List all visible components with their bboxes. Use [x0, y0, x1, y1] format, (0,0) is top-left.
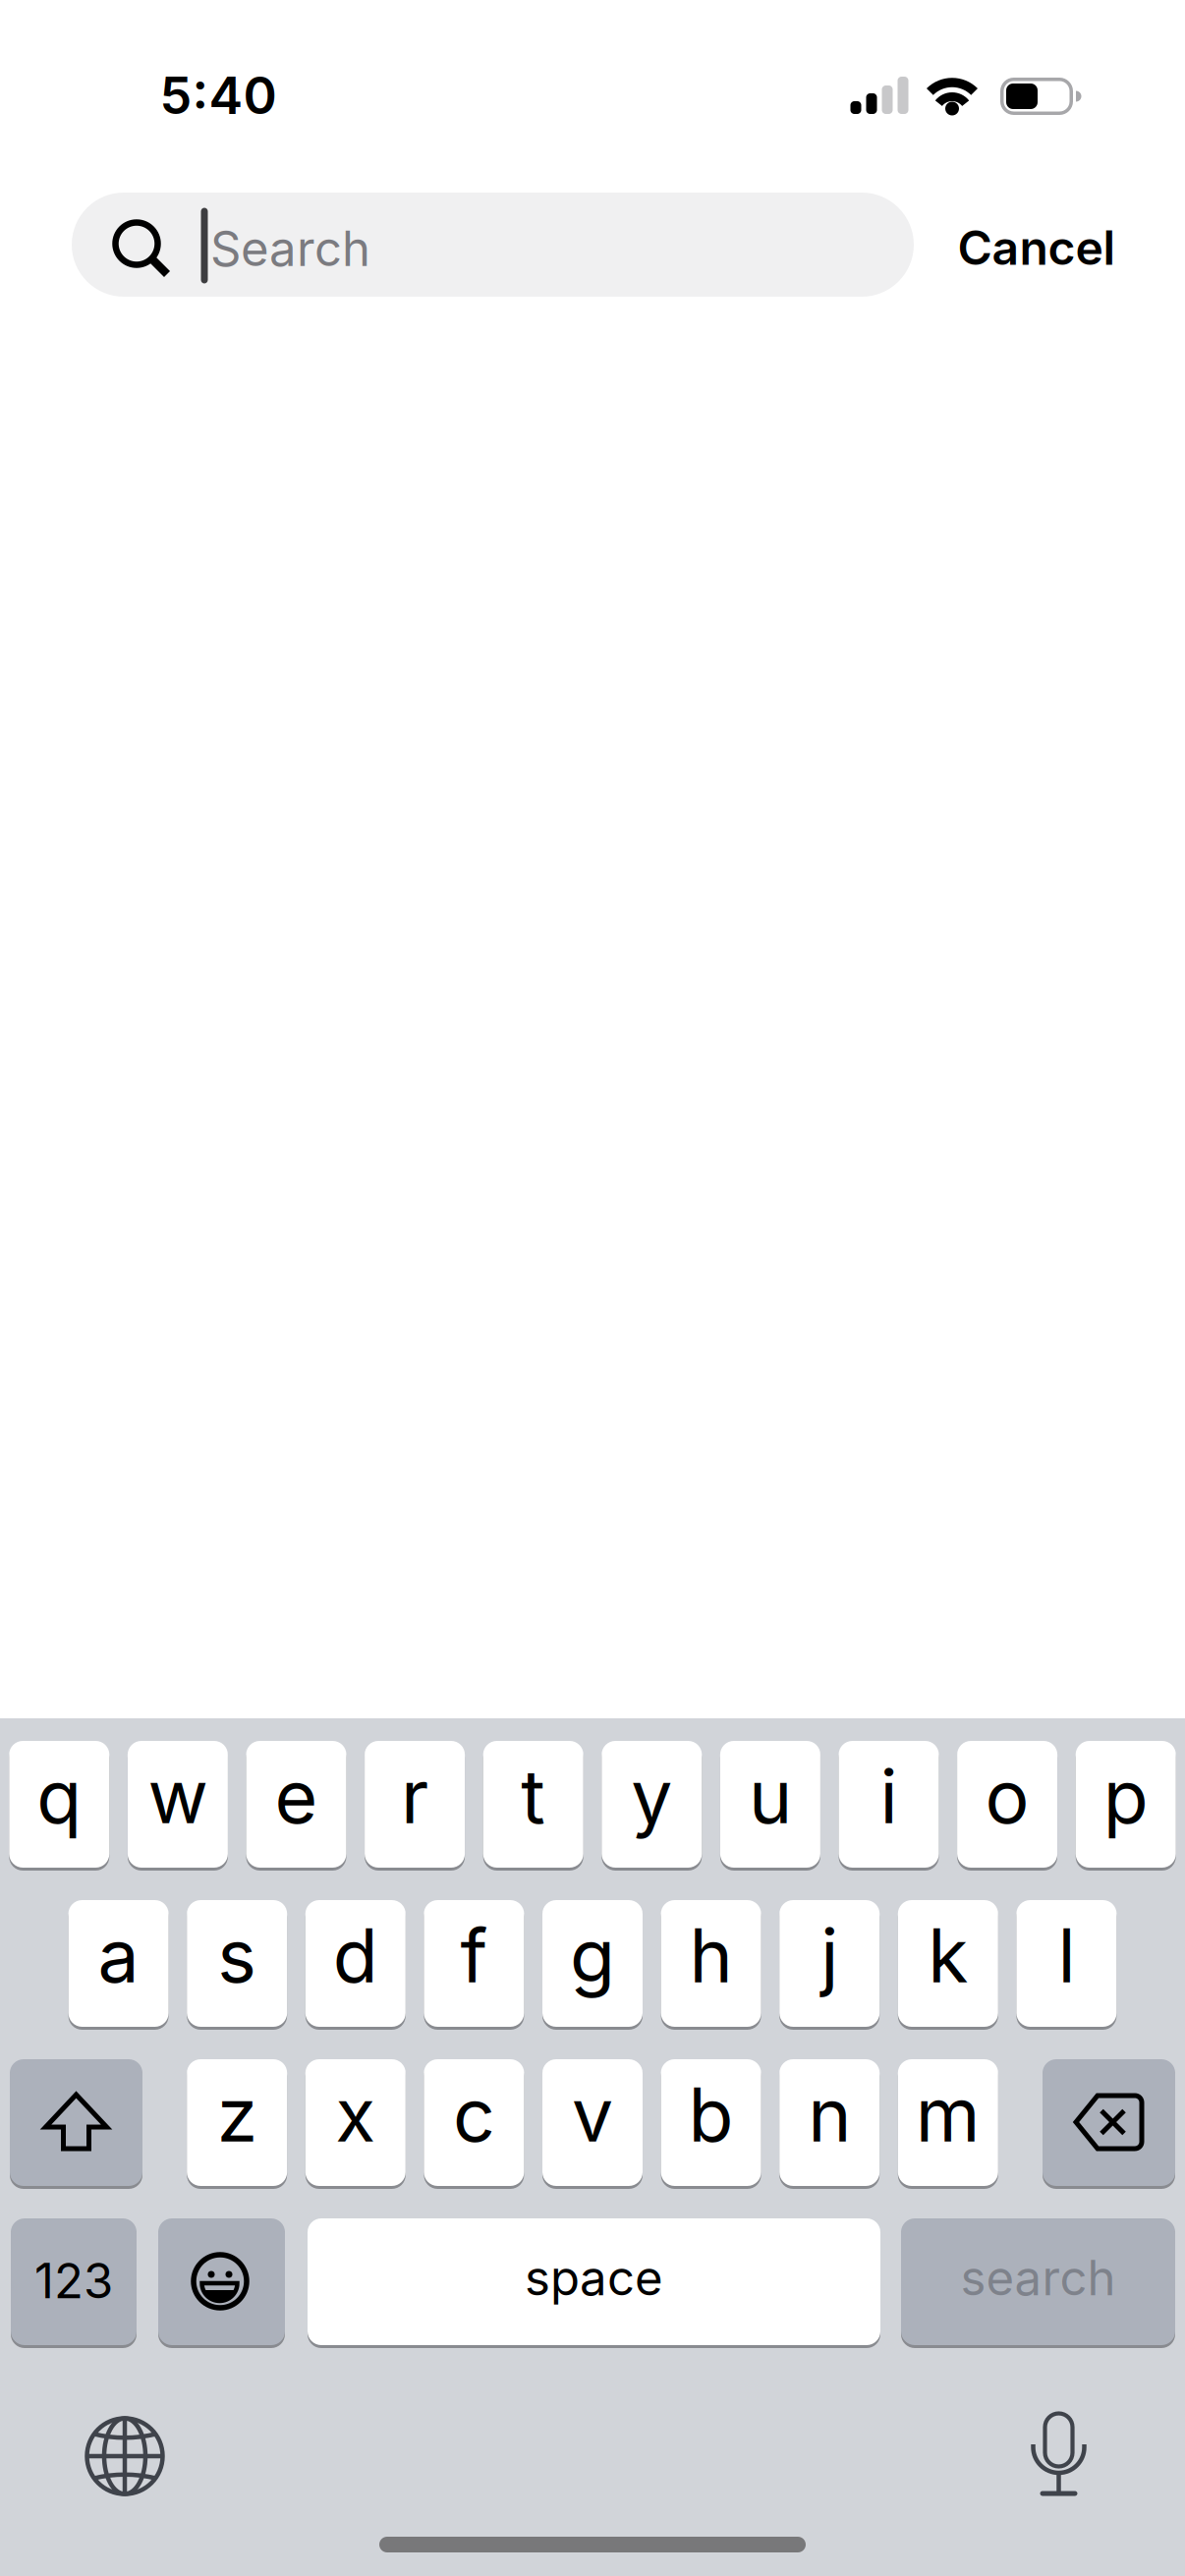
staticText: search — [960, 2249, 1116, 2306]
button[interactable]: Cancel — [943, 196, 1130, 300]
staticText: y — [631, 1753, 672, 1840]
button[interactable]: Next keyboard — [66, 2397, 184, 2515]
button[interactable]: d — [305, 1900, 406, 2027]
staticText: a — [98, 1912, 139, 1999]
button[interactable]: o — [957, 1741, 1057, 1868]
button[interactable]: w — [128, 1741, 228, 1868]
button[interactable]: 123 — [11, 2218, 137, 2345]
button[interactable]: z — [187, 2059, 287, 2186]
staticText: l — [1058, 1912, 1075, 1999]
staticText: j — [821, 1912, 838, 1999]
staticText: d — [333, 1912, 378, 1999]
staticText: Search — [210, 220, 370, 277]
staticText: h — [689, 1912, 733, 1999]
button[interactable]: k — [898, 1900, 998, 2027]
button[interactable]: h — [661, 1900, 761, 2027]
button[interactable]: x — [305, 2059, 406, 2186]
staticText: t — [521, 1753, 546, 1840]
button[interactable]: u — [720, 1741, 820, 1868]
staticText: c — [453, 2071, 495, 2158]
staticText: g — [570, 1912, 615, 1999]
button[interactable]: j — [779, 1900, 880, 2027]
staticText: n — [808, 2071, 851, 2158]
staticText: 5:40 — [160, 65, 277, 125]
staticText: r — [401, 1753, 429, 1840]
button[interactable]: e — [246, 1741, 346, 1868]
staticText: Cancel — [958, 220, 1116, 275]
staticText: q — [37, 1753, 82, 1840]
staticText: m — [916, 2071, 980, 2158]
staticText: w — [148, 1753, 208, 1840]
staticText: e — [275, 1753, 318, 1840]
staticText: k — [928, 1912, 968, 1999]
button[interactable]: space — [308, 2218, 880, 2345]
button[interactable]: Emoji — [158, 2218, 285, 2345]
button[interactable]: Shift — [10, 2059, 142, 2186]
staticText: i — [880, 1753, 898, 1840]
staticText: o — [985, 1753, 1029, 1840]
button[interactable]: Dictate — [1005, 2395, 1113, 2513]
staticText: z — [217, 2071, 257, 2158]
button[interactable]: r — [365, 1741, 465, 1868]
staticText: space — [525, 2249, 663, 2306]
staticText: 123 — [34, 2252, 113, 2309]
button[interactable]: t — [483, 1741, 583, 1868]
button[interactable]: s — [187, 1900, 287, 2027]
staticText: f — [460, 1912, 488, 1999]
button[interactable]: i — [839, 1741, 939, 1868]
button[interactable]: y — [602, 1741, 702, 1868]
button[interactable]: c — [424, 2059, 524, 2186]
button[interactable]: n — [779, 2059, 880, 2186]
button[interactable]: a — [68, 1900, 169, 2027]
button[interactable]: b — [661, 2059, 761, 2186]
button[interactable]: Delete — [1043, 2059, 1175, 2186]
button[interactable]: q — [9, 1741, 109, 1868]
button[interactable]: v — [542, 2059, 643, 2186]
staticText: p — [1103, 1753, 1148, 1840]
button[interactable]: Search — [72, 193, 914, 297]
staticText: u — [749, 1753, 792, 1840]
button[interactable]: p — [1076, 1741, 1176, 1868]
staticText: b — [688, 2071, 734, 2158]
button[interactable]: f — [424, 1900, 524, 2027]
button[interactable]: l — [1016, 1900, 1117, 2027]
button[interactable]: search — [901, 2218, 1175, 2345]
staticText: s — [217, 1912, 257, 1999]
staticText: v — [572, 2071, 613, 2158]
staticText: x — [335, 2071, 376, 2158]
button[interactable]: g — [542, 1900, 643, 2027]
button[interactable]: m — [898, 2059, 998, 2186]
